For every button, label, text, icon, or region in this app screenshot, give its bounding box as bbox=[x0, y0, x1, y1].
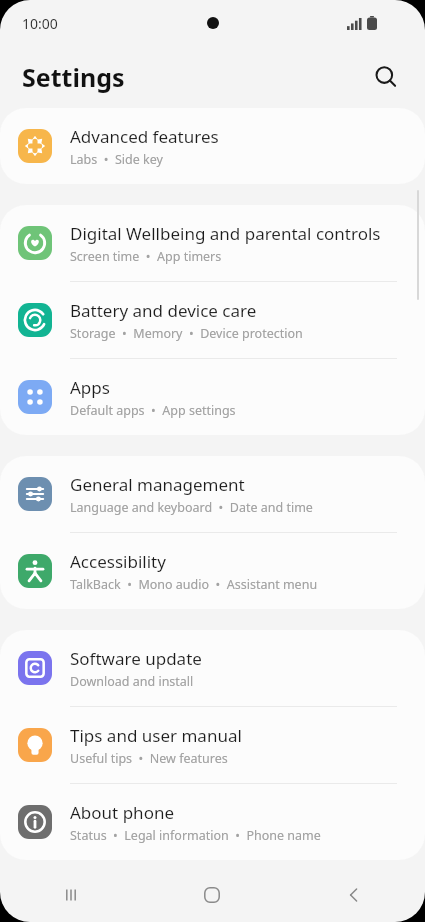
staticText: Useful tips • New features bbox=[70, 750, 228, 767]
staticText: TalkBack • Mono audio • Assistant menu bbox=[70, 576, 318, 593]
staticText: Tips and user manual bbox=[70, 724, 242, 747]
button[interactable]: Advanced features bbox=[0, 108, 425, 184]
staticText: Battery and device care bbox=[70, 299, 257, 322]
button[interactable]: Recents bbox=[0, 868, 141, 922]
button[interactable]: Software update bbox=[0, 630, 425, 706]
button[interactable]: Tips and user manual bbox=[0, 707, 425, 783]
button[interactable]: Home bbox=[141, 868, 283, 922]
staticText: Digital Wellbeing and parental controls bbox=[70, 222, 381, 245]
staticText: Software update bbox=[70, 647, 202, 670]
button[interactable]: Back bbox=[283, 868, 425, 922]
staticText: About phone bbox=[70, 801, 175, 824]
button[interactable]: About phone bbox=[0, 784, 425, 860]
staticText: Apps bbox=[70, 376, 110, 399]
staticText: Storage • Memory • Device protection bbox=[70, 325, 303, 342]
staticText: Advanced features bbox=[70, 125, 219, 148]
staticText: Download and install bbox=[70, 673, 194, 690]
button[interactable]: Apps bbox=[0, 359, 425, 435]
staticText: Accessibility bbox=[70, 550, 166, 573]
button[interactable]: Accessibility bbox=[0, 533, 425, 609]
staticText: Language and keyboard • Date and time bbox=[70, 499, 313, 516]
staticText: Labs • Side key bbox=[70, 151, 163, 168]
staticText: Status • Legal information • Phone name bbox=[70, 827, 321, 844]
staticText: Screen time • App timers bbox=[70, 248, 222, 265]
staticText: Settings bbox=[22, 60, 125, 94]
button[interactable]: Search bbox=[369, 60, 403, 94]
staticText: 10:00 bbox=[22, 14, 58, 33]
staticText: Default apps • App settings bbox=[70, 402, 236, 419]
staticText: General management bbox=[70, 473, 245, 496]
button[interactable]: Digital Wellbeing and parental controls bbox=[0, 205, 425, 281]
button[interactable]: General management bbox=[0, 456, 425, 532]
button[interactable]: Battery and device care bbox=[0, 282, 425, 358]
